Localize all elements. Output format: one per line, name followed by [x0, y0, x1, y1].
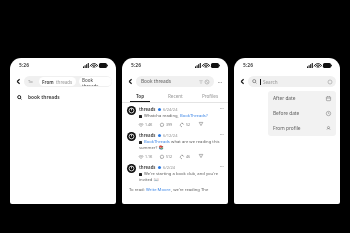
button[interactable]: Before date: [268, 106, 336, 121]
button[interactable]: 512: [160, 154, 173, 159]
staticText: summer? 📚: [139, 145, 164, 151]
button[interactable]: book threads: [10, 92, 116, 103]
staticText: 512: [166, 154, 173, 159]
staticText: To:: [28, 79, 34, 84]
staticText: To read:: [129, 187, 146, 193]
staticText: what are we reading this: [170, 139, 220, 145]
staticText: 5:26: [243, 62, 253, 69]
staticText: 6/12/24: [163, 133, 178, 138]
button[interactable]: After date: [268, 91, 336, 106]
staticText: Before date: [273, 110, 300, 117]
staticText: Book threads: [82, 77, 109, 86]
staticText: From profile: [273, 125, 301, 132]
button[interactable]: threads: [122, 103, 228, 129]
button[interactable]: threads: [122, 129, 228, 161]
staticText: invited 📖: [139, 177, 159, 183]
staticText: 6/24/24: [163, 107, 178, 112]
staticText: Whatcha reading,: [144, 113, 180, 119]
staticText: From: [42, 79, 54, 85]
staticText: •••: [218, 80, 222, 85]
staticText: •••: [220, 165, 224, 169]
button[interactable]: More: [216, 78, 224, 86]
button[interactable]: Share: [198, 121, 204, 127]
staticText: 399: [166, 122, 173, 127]
button[interactable]: To:: [24, 76, 112, 87]
staticText: threads: [139, 164, 156, 170]
button[interactable]: Book threads: [141, 76, 209, 87]
staticText: 1.4K: [145, 122, 153, 127]
button[interactable]: Recent: [158, 90, 193, 102]
staticText: 1.1K: [145, 154, 153, 159]
staticText: We're starting a book club, and you're: [144, 171, 219, 177]
button[interactable]: 52: [180, 122, 191, 127]
staticText: Book threads: [141, 78, 171, 85]
staticText: Profiles: [202, 93, 219, 99]
staticText: BookThreads?: [180, 113, 208, 119]
staticText: 6/2/24: [163, 165, 176, 170]
button[interactable]: Search: [252, 76, 332, 87]
staticText: Search: [263, 79, 278, 85]
button[interactable]: Back: [14, 77, 23, 86]
staticText: 5:26: [131, 62, 141, 69]
staticText: threads: [139, 132, 156, 138]
button[interactable]: Share: [198, 153, 204, 159]
button[interactable]: threads: [122, 161, 228, 185]
button[interactable]: 399: [160, 122, 173, 127]
staticText: threads: [139, 106, 156, 112]
staticText: 5:26: [19, 62, 29, 69]
staticText: book threads: [28, 94, 60, 101]
button[interactable]: Profiles: [193, 90, 228, 102]
button[interactable]: 1.1K: [139, 154, 153, 159]
button[interactable]: Top: [122, 90, 158, 102]
staticText: 46: [186, 154, 191, 159]
staticText: After date: [273, 95, 296, 102]
staticText: BookThreads: [144, 139, 170, 145]
button[interactable]: Back: [238, 77, 247, 86]
staticText: •••: [220, 133, 224, 137]
staticText: Recent: [168, 93, 183, 99]
button[interactable]: 1.4K: [139, 122, 153, 127]
button[interactable]: From profile: [268, 121, 336, 136]
staticText: •••: [220, 107, 224, 111]
staticText: 52: [186, 122, 191, 127]
staticText: threads: [56, 79, 73, 85]
staticText: Top: [136, 93, 145, 99]
button[interactable]: 46: [180, 154, 191, 159]
button[interactable]: Back: [126, 77, 135, 86]
staticText: Write Moore: [146, 187, 171, 193]
staticText: , we're reading The: [171, 187, 209, 193]
